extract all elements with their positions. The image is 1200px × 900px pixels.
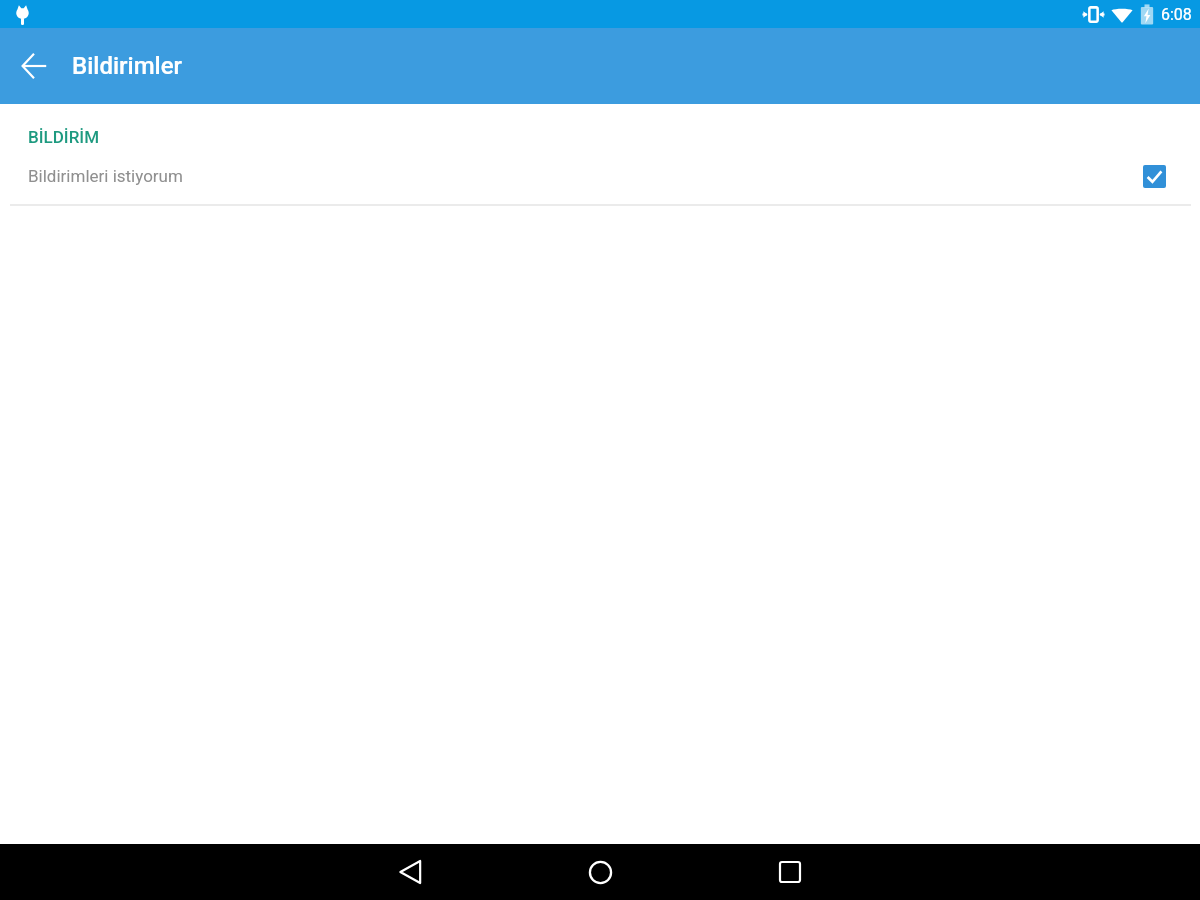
button[interactable]: Bildirimleri istiyorum [0,148,1200,203]
staticText: Bildirimleri istiyorum [28,166,183,186]
staticText: Bildirimler [72,52,182,80]
staticText: 6:08 [1161,5,1192,24]
button[interactable]: Recent apps [761,844,819,900]
button[interactable]: Navigate up [11,43,57,89]
button[interactable]: Bildirimleri istiyorum, checked [1137,159,1171,193]
staticText: BİLDİRİM [28,127,100,147]
button[interactable]: Back [381,844,439,900]
button[interactable]: Home [571,844,629,900]
